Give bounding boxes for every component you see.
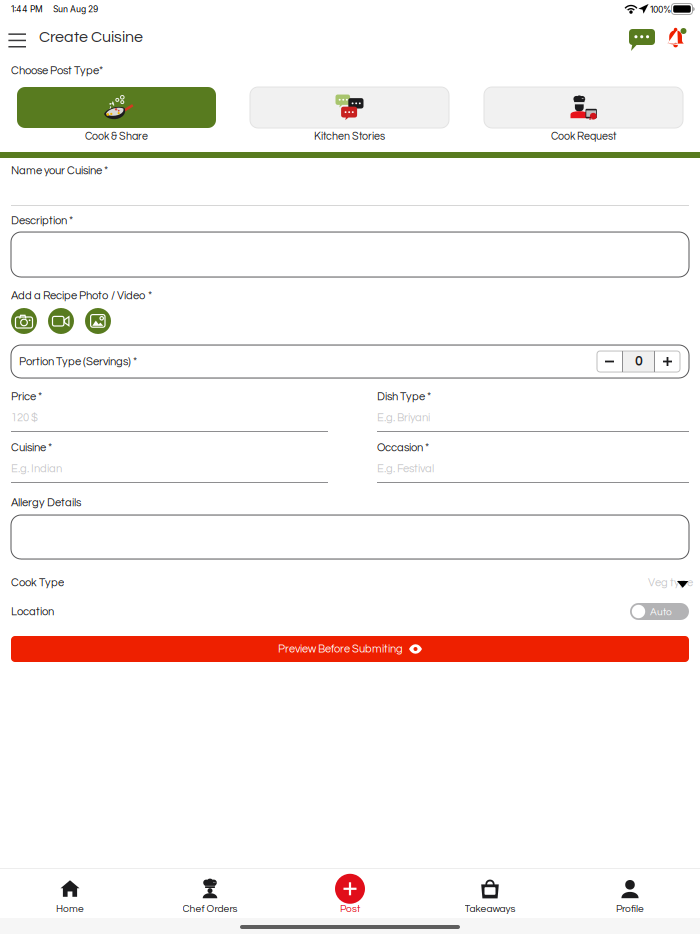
button[interactable]: Messages [625,26,661,54]
button[interactable]: Home [0,871,140,917]
staticText: 120 $ [11,412,38,423]
staticText: Dish Type * [377,391,431,402]
staticText: Cuisine * [11,442,52,453]
button[interactable]: Decrease servings [597,351,622,372]
staticText: Location [11,606,54,617]
button[interactable]: Choose from library [85,308,111,334]
staticText: Create Cuisine [39,29,143,45]
button[interactable]: Cook & Share [17,87,216,143]
button[interactable]: Kitchen Stories [250,87,449,143]
button[interactable]: Record video [48,308,74,334]
staticText: Sun Aug 29 [53,4,98,14]
staticText: Name your Cuisine * [11,165,108,176]
staticText: Cook & Share [85,131,148,142]
staticText: E.g. Festival [377,463,434,474]
staticText: Add a Recipe Photo / Video * [11,290,152,301]
staticText: 1:44 PM [11,4,43,14]
staticText: Auto [650,607,672,617]
staticText: Portion Type (Servings) * [19,356,137,367]
staticText: Choose Post Type* [11,65,103,76]
button[interactable]: Menu [2,24,34,56]
staticText: Profile [616,904,644,914]
staticText: Allergy Details [11,497,81,508]
staticText: Takeaways [464,904,515,914]
staticText: Chef Orders [182,904,237,914]
staticText: Price * [11,391,42,402]
button[interactable]: Takeaways [420,871,560,917]
staticText: Description * [11,215,73,226]
button[interactable]: Profile [560,871,700,917]
staticText: Preview Before Submiting [278,643,403,655]
button[interactable]: Preview Before Submiting [11,636,689,662]
staticText: Post [340,904,360,914]
button[interactable]: Auto location [630,602,689,620]
button[interactable]: Cook type picker [560,575,689,591]
button[interactable]: Cook Request [484,87,683,143]
staticText: Veg type [648,577,693,588]
staticText: Cook Request [551,131,616,142]
staticText: 0 [635,355,642,368]
staticText: 100% [650,4,671,15]
button[interactable]: Notifications [662,25,692,55]
staticText: E.g. Briyani [377,412,430,423]
button[interactable]: Chef Orders [140,871,280,917]
staticText: Cook Type [11,577,64,588]
staticText: Kitchen Stories [314,131,385,142]
staticText: Occasion * [377,442,429,453]
button[interactable]: Increase servings [655,351,680,372]
button[interactable]: Post [280,871,420,917]
button[interactable]: Take photo [11,308,37,334]
staticText: E.g. Indian [11,463,62,474]
staticText: Home [56,904,84,914]
